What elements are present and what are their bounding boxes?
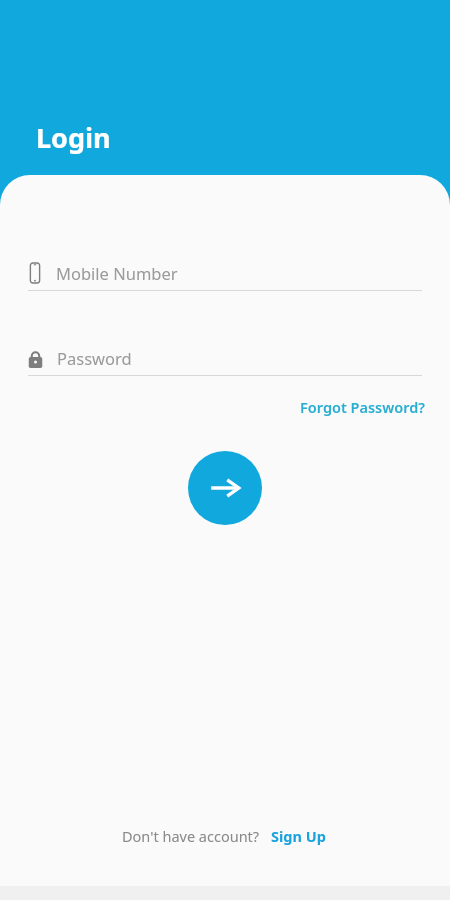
staticText: Password [57, 347, 132, 369]
staticText: Mobile Number [56, 262, 178, 284]
button[interactable]: Mobile Number [28, 255, 422, 291]
staticText: Forgot Password? [300, 397, 426, 417]
staticText: Don't have account? [122, 826, 260, 846]
button[interactable]: Sign Up [269, 823, 328, 849]
button[interactable]: Log in [188, 451, 262, 525]
button[interactable]: Forgot Password? [296, 393, 430, 421]
staticText: Sign Up [271, 826, 326, 846]
button[interactable]: Password [28, 340, 422, 376]
staticText: Login [36, 119, 111, 156]
